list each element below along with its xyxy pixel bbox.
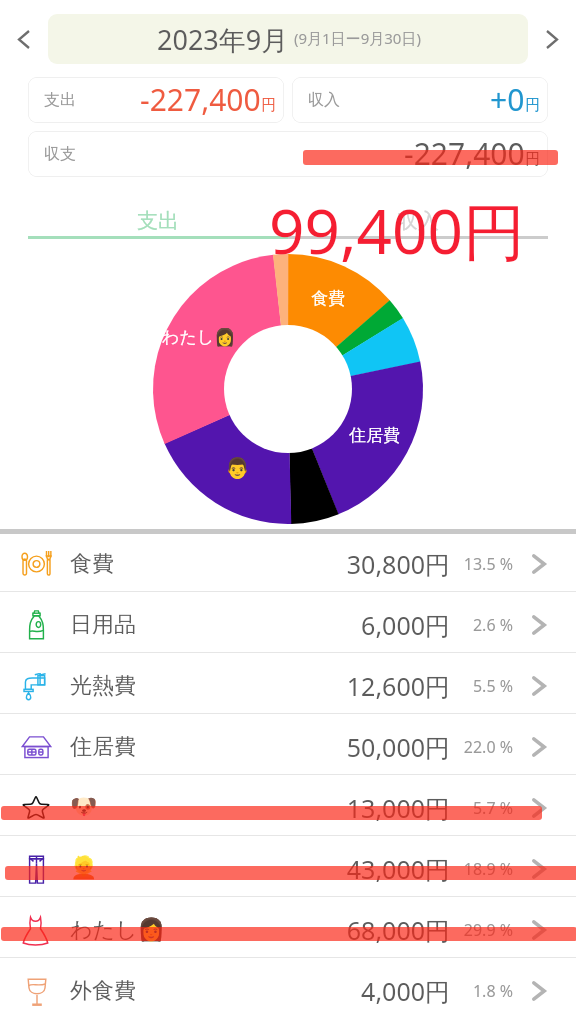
staticText: 6,000円 xyxy=(250,608,450,642)
staticText: +0 xyxy=(490,79,525,120)
staticText: 13,000円 xyxy=(250,791,450,825)
button[interactable]: 2023年9月 xyxy=(48,14,528,64)
button[interactable]: 外食費 xyxy=(0,958,576,1018)
button[interactable]: 日用品 xyxy=(0,592,576,652)
button[interactable]: 収支 xyxy=(28,131,548,177)
button[interactable]: 住居費 xyxy=(0,714,576,774)
staticText: 支出 xyxy=(137,208,179,234)
staticText: 50,000円 xyxy=(250,730,450,764)
staticText: わたし👩 xyxy=(70,916,165,944)
staticText: 13.5 % xyxy=(452,553,513,575)
staticText: 食費 xyxy=(70,550,114,578)
staticText: -227,400 xyxy=(404,133,525,174)
staticText: 住居費 xyxy=(349,425,400,446)
button[interactable]: 収入 xyxy=(288,204,548,240)
staticText: 円 xyxy=(525,96,540,115)
staticText: 12,600円 xyxy=(250,669,450,703)
staticText: 99,400円 xyxy=(269,188,525,273)
staticText: 2023年9月 xyxy=(157,21,289,58)
button[interactable]: 収入 xyxy=(292,77,548,123)
staticText: 支出 xyxy=(44,90,76,110)
staticText: 43,000円 xyxy=(250,852,450,886)
staticText: 食費 xyxy=(311,288,345,309)
staticText: 18.9 % xyxy=(452,858,513,880)
staticText: 外食費 xyxy=(70,977,136,1005)
staticText: 4,000円 xyxy=(250,974,450,1008)
button[interactable]: わたし👩 xyxy=(0,897,576,957)
staticText: 22.0 % xyxy=(452,736,513,758)
staticText: 光熱費 xyxy=(70,672,136,700)
button[interactable]: 支出 xyxy=(28,204,288,240)
staticText: (9月1日ー9月30日) xyxy=(294,28,421,48)
staticText: 5.7 % xyxy=(452,797,513,819)
button[interactable]: 👱 xyxy=(0,836,576,896)
button[interactable]: 光熱費 xyxy=(0,653,576,713)
staticText: 30,800円 xyxy=(250,547,450,581)
button[interactable]: Previous month xyxy=(5,20,43,58)
staticText: 👱 xyxy=(70,855,98,881)
button[interactable]: 食費 xyxy=(0,531,576,591)
staticText: -227,400 xyxy=(140,79,261,120)
staticText: 住居費 xyxy=(70,733,136,761)
staticText: 2.6 % xyxy=(452,614,513,636)
staticText: 収支 xyxy=(44,144,76,164)
staticText: 👨 xyxy=(225,456,250,479)
staticText: 29.9 % xyxy=(452,919,513,941)
staticText: 収入 xyxy=(308,90,340,110)
staticText: 日用品 xyxy=(70,611,136,639)
staticText: 円 xyxy=(261,96,276,115)
button[interactable]: 支出 xyxy=(28,77,284,123)
staticText: 収入 xyxy=(397,208,439,234)
staticText: わたし👩 xyxy=(162,327,236,348)
staticText: 円 xyxy=(525,150,540,169)
staticText: 5.5 % xyxy=(452,675,513,697)
staticText: 🐶 xyxy=(70,794,98,820)
staticText: 1.8 % xyxy=(452,980,513,1002)
button[interactable]: 🐶 xyxy=(0,775,576,835)
button[interactable]: Next month xyxy=(533,20,571,58)
staticText: 68,000円 xyxy=(250,913,450,947)
